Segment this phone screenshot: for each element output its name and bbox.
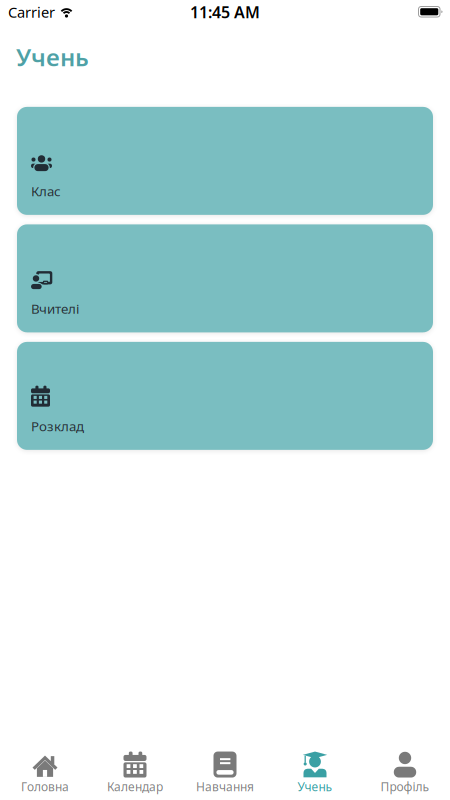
button[interactable]: Клас	[17, 107, 433, 215]
staticText: Учень	[16, 41, 89, 73]
button[interactable]: Учень	[270, 752, 360, 794]
staticText: Клас	[31, 182, 61, 200]
button[interactable]: Навчання	[180, 752, 270, 794]
staticText: Навчання	[196, 779, 254, 794]
staticText: Carrier	[8, 2, 55, 22]
staticText: Розклад	[31, 417, 84, 435]
button[interactable]: Профіль	[360, 752, 450, 794]
staticText: Вчителі	[31, 300, 79, 317]
staticText: Календар	[107, 779, 163, 794]
button[interactable]: Розклад	[17, 342, 433, 450]
staticText: 11:45 AM	[190, 1, 260, 23]
button[interactable]: Головна	[0, 755, 90, 794]
staticText: Профіль	[380, 779, 429, 794]
button[interactable]: Вчителі	[17, 224, 433, 332]
staticText: Учень	[297, 779, 332, 794]
button[interactable]: Календар	[90, 752, 180, 794]
staticText: Головна	[21, 779, 69, 794]
